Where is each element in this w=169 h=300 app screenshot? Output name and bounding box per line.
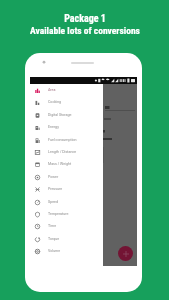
button[interactable]: Volume — [30, 245, 103, 257]
button[interactable]: Speed — [30, 196, 103, 208]
staticText: Package 1 — [64, 13, 106, 25]
staticText: Temperature — [48, 212, 69, 216]
staticText: Time — [48, 224, 57, 228]
button[interactable]: Torque — [30, 233, 103, 245]
staticText: Speed — [48, 200, 58, 204]
button[interactable]: Area — [30, 84, 103, 96]
button[interactable]: Time — [30, 220, 103, 232]
staticText: Digital Storage — [48, 113, 72, 117]
staticText: Available lots of conversions — [30, 25, 140, 36]
button[interactable]: Power — [30, 171, 103, 183]
staticText: Mass / Weight — [48, 162, 72, 166]
staticText: Fuel consumption — [48, 138, 77, 142]
button[interactable]: Length / Distance — [30, 146, 103, 158]
button[interactable]: Digital Storage — [30, 109, 103, 121]
staticText: Cooking — [48, 100, 62, 104]
staticText: Volume — [48, 249, 61, 253]
button[interactable]: Cooking — [30, 96, 103, 108]
button[interactable]: Temperature — [30, 208, 103, 220]
staticText: Length / Distance — [48, 150, 77, 154]
staticText: Energy — [48, 125, 59, 129]
button[interactable]: Pressure — [30, 183, 103, 195]
staticText: Torque — [48, 237, 60, 241]
staticText: Power — [48, 175, 59, 179]
button[interactable]: Add conversion — [118, 246, 133, 261]
staticText: Area — [48, 88, 56, 92]
staticText: Pressure — [48, 187, 63, 191]
button[interactable]: Mass / Weight — [30, 158, 103, 170]
button[interactable]: Energy — [30, 121, 103, 133]
button[interactable]: Fuel consumption — [30, 134, 103, 146]
